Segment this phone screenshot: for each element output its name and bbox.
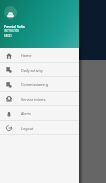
staticText: Home <box>21 53 32 58</box>
staticText: 9977592108 <box>4 29 19 33</box>
button[interactable]: Service tickets <box>0 92 79 106</box>
staticText: Commissioning <box>21 82 48 87</box>
staticText: Daily activity <box>21 68 43 73</box>
button[interactable]: Daily activity <box>0 63 79 77</box>
staticText: Alerts <box>21 111 32 116</box>
staticText: MKID <box>4 34 12 38</box>
staticText: Logout <box>21 126 34 131</box>
staticText: Premial Sofia <box>4 24 25 28</box>
button[interactable]: Home <box>0 48 79 63</box>
button[interactable]: Commissioning <box>0 77 79 92</box>
staticText: Service tickets <box>21 97 46 102</box>
button[interactable]: Alerts <box>0 106 79 121</box>
button[interactable]: Logout <box>0 121 79 135</box>
